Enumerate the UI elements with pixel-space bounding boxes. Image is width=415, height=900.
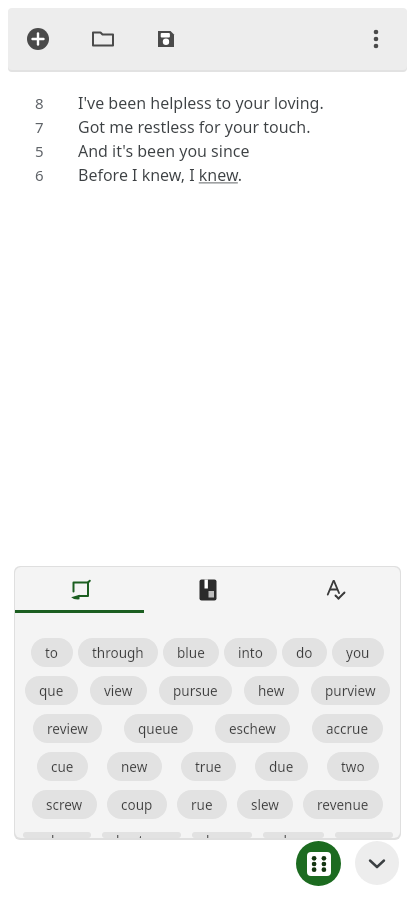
- button[interactable]: screw: [32, 790, 97, 819]
- staticText: blue: [177, 644, 205, 662]
- staticText: purview: [325, 682, 376, 700]
- staticText: slew: [251, 796, 279, 814]
- staticText: And it's been you since: [78, 140, 250, 162]
- button[interactable]: through: [78, 638, 158, 667]
- button[interactable]: to: [31, 638, 73, 667]
- button[interactable]: two: [327, 752, 379, 781]
- staticText: Before I knew, I knew.: [78, 164, 243, 186]
- staticText: askew: [37, 832, 77, 838]
- staticText: true: [195, 758, 222, 776]
- button[interactable]: rue: [177, 790, 227, 819]
- button[interactable]: [355, 841, 399, 885]
- button[interactable]: [89, 25, 117, 53]
- button[interactable]: pursue: [159, 676, 232, 705]
- button[interactable]: brew: [192, 832, 252, 838]
- staticText: 7: [35, 117, 44, 137]
- button[interactable]: [15, 567, 144, 613]
- button[interactable]: blue: [163, 638, 219, 667]
- button[interactable]: [144, 567, 272, 613]
- staticText: accrue: [326, 720, 369, 738]
- staticText: do: [296, 644, 313, 662]
- button[interactable]: view: [90, 676, 147, 705]
- button[interactable]: accrue: [312, 714, 383, 743]
- staticText: two: [341, 758, 365, 776]
- staticText: coup: [121, 796, 153, 814]
- staticText: into: [238, 644, 263, 662]
- button[interactable]: chew: [263, 832, 324, 838]
- button[interactable]: [152, 25, 180, 53]
- button[interactable]: askew: [23, 832, 91, 838]
- staticText: 6: [35, 165, 44, 185]
- button[interactable]: purview: [311, 676, 390, 705]
- button[interactable]: queue: [124, 714, 193, 743]
- staticText: through: [92, 644, 144, 662]
- staticText: brew: [206, 832, 238, 838]
- button[interactable]: review: [33, 714, 102, 743]
- button[interactable]: bestrew: [102, 832, 181, 838]
- staticText: screw: [46, 796, 83, 814]
- button[interactable]: new: [107, 752, 162, 781]
- staticText: que: [39, 682, 64, 700]
- button[interactable]: revenue: [303, 790, 383, 819]
- staticText: to: [45, 644, 59, 662]
- button[interactable]: hew: [244, 676, 299, 705]
- button[interactable]: [24, 25, 52, 53]
- staticText: chew: [277, 832, 310, 838]
- staticText: rue: [191, 796, 213, 814]
- staticText: 8: [35, 93, 44, 113]
- staticText: eschew: [229, 720, 276, 738]
- staticText: 5: [35, 141, 44, 161]
- staticText: bestrew: [116, 832, 167, 838]
- button[interactable]: into: [224, 638, 277, 667]
- staticText: review: [47, 720, 88, 738]
- button[interactable]: true: [181, 752, 236, 781]
- button[interactable]: slew: [237, 790, 293, 819]
- staticText: hew: [258, 682, 285, 700]
- staticText: cue: [51, 758, 74, 776]
- staticText: due: [269, 758, 294, 776]
- button[interactable]: que: [25, 676, 78, 705]
- staticText: view: [104, 682, 133, 700]
- button[interactable]: do: [282, 638, 327, 667]
- button[interactable]: coup: [107, 790, 167, 819]
- staticText: new: [121, 758, 148, 776]
- staticText: queue: [138, 720, 179, 738]
- button[interactable]: cue: [37, 752, 88, 781]
- staticText: you: [346, 644, 370, 662]
- button[interactable]: eschew: [215, 714, 290, 743]
- button[interactable]: [296, 841, 341, 886]
- button[interactable]: [272, 567, 400, 613]
- button[interactable]: [362, 25, 390, 53]
- staticText: revenue: [317, 796, 369, 814]
- button[interactable]: you: [332, 638, 384, 667]
- button[interactable]: due: [255, 752, 308, 781]
- staticText: pursue: [173, 682, 218, 700]
- staticText: Got me restless for your touch.: [78, 116, 311, 138]
- staticText: I've been helpless to your loving.: [78, 92, 324, 114]
